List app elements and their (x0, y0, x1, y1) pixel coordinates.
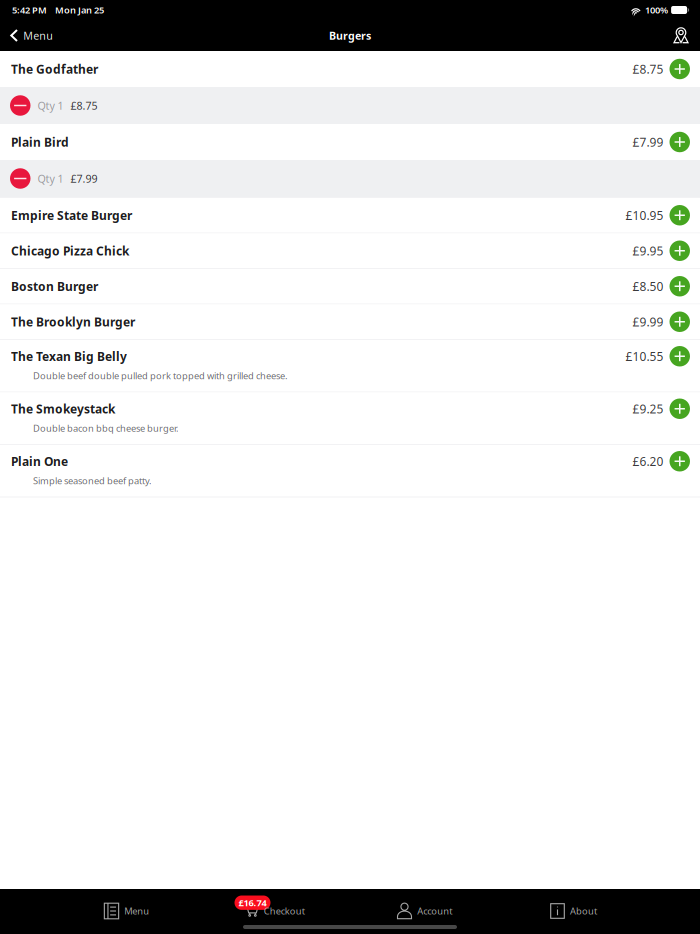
staticText: £10.55 (625, 348, 663, 364)
button[interactable]: £16.74 (201, 898, 350, 924)
staticText: Plain Bird (11, 134, 69, 150)
staticText: Menu (23, 28, 53, 43)
staticText: The Godfather (11, 61, 98, 77)
button[interactable]: Chicago Pizza Chick (0, 233, 700, 268)
staticText: £7.99 (70, 171, 97, 186)
staticText: Boston Burger (11, 278, 98, 294)
staticText: Qty 1 (37, 98, 63, 113)
button[interactable]: Store locations (664, 20, 698, 51)
button[interactable]: Qty 1 (0, 160, 700, 197)
staticText: £8.75 (632, 61, 663, 77)
staticText: 5:42 PM (12, 4, 47, 16)
button[interactable]: The Godfather (0, 51, 700, 87)
staticText: Double bacon bbq cheese burger. (33, 422, 179, 434)
staticText: Mon Jan 25 (55, 4, 104, 16)
button[interactable]: The Brooklyn Burger (0, 304, 700, 339)
button[interactable]: Plain One (0, 445, 700, 496)
staticText: £7.99 (632, 134, 663, 150)
staticText: £9.95 (632, 243, 663, 259)
staticText: Double beef double pulled pork topped wi… (33, 369, 288, 382)
button[interactable]: About (499, 898, 648, 924)
button[interactable]: Plain Bird (0, 124, 700, 160)
staticText: £9.25 (632, 401, 663, 417)
staticText: 100% (645, 4, 668, 16)
button[interactable]: The Texan Big Belly (0, 340, 700, 391)
staticText: £16.74 (238, 896, 266, 909)
button[interactable]: Boston Burger (0, 269, 700, 303)
staticText: £10.95 (625, 207, 663, 223)
staticText: £8.75 (70, 98, 97, 113)
staticText: Account (417, 905, 452, 917)
button[interactable]: Account (350, 898, 499, 924)
staticText: Checkout (264, 905, 305, 917)
button[interactable]: Empire State Burger (0, 198, 700, 232)
staticText: £8.50 (632, 278, 663, 294)
staticText: Qty 1 (37, 171, 63, 186)
staticText: Simple seasoned beef patty. (33, 474, 152, 487)
staticText: The Brooklyn Burger (11, 314, 135, 330)
staticText: Burgers (329, 28, 371, 43)
staticText: £6.20 (632, 453, 663, 469)
button[interactable]: Qty 1 (0, 87, 700, 124)
staticText: About (570, 905, 597, 917)
button[interactable]: Menu (2, 20, 61, 51)
staticText: Plain One (11, 453, 68, 469)
button[interactable]: Menu (52, 898, 201, 924)
staticText: The Smokeystack (11, 401, 115, 417)
staticText: Empire State Burger (11, 207, 132, 223)
button[interactable]: The Smokeystack (0, 392, 700, 444)
staticText: Menu (124, 905, 149, 917)
staticText: Chicago Pizza Chick (11, 243, 129, 259)
staticText: £9.99 (632, 314, 663, 330)
staticText: The Texan Big Belly (11, 348, 127, 364)
